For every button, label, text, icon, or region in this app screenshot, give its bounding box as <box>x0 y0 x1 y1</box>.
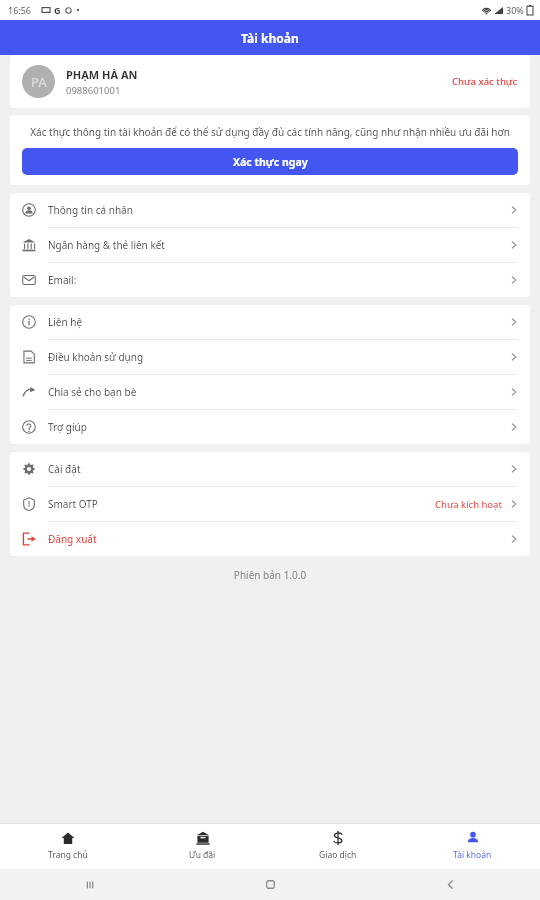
staticText: Ưu đãi <box>189 849 216 861</box>
button[interactable]: Xác thực ngay <box>22 148 518 175</box>
staticText: 30% <box>506 4 524 16</box>
staticText: PHẠM HÀ AN <box>66 67 138 82</box>
staticText: Phiên bản 1.0.0 <box>0 568 540 582</box>
button[interactable]: Email: <box>10 263 530 297</box>
button[interactable]: Ưu đãi <box>135 824 270 869</box>
button[interactable]: Đăng xuất <box>10 522 530 556</box>
staticText: Chưa xác thực <box>452 75 518 88</box>
staticText: Email: <box>48 273 510 287</box>
button[interactable]: Cài đặt <box>10 452 530 487</box>
staticText: Tài khoản <box>241 30 299 46</box>
staticText: G <box>54 4 61 16</box>
staticText: Thông tin cá nhân <box>48 203 510 217</box>
staticText: 16:56 <box>8 4 32 16</box>
button[interactable]: Smart OTP <box>10 487 530 522</box>
staticText: 0988601001 <box>66 84 121 97</box>
button[interactable]: Điều khoản sử dụng <box>10 340 530 375</box>
staticText: Xác thực ngay <box>233 155 308 169</box>
button[interactable]: Ngân hàng & thẻ liên kết <box>10 228 530 263</box>
button[interactable]: Thông tin cá nhân <box>10 193 530 228</box>
staticText: Tài khoản <box>453 849 492 861</box>
button[interactable]: PA <box>10 55 530 108</box>
staticText: Đăng xuất <box>48 532 510 546</box>
button[interactable]: Giao dịch <box>270 824 405 869</box>
staticText: Liên hệ <box>48 315 510 329</box>
button[interactable]: Trợ giúp <box>10 410 530 444</box>
button[interactable]: Tài khoản <box>405 824 540 869</box>
staticText: Điều khoản sử dụng <box>48 350 510 364</box>
staticText: Smart OTP <box>48 497 435 511</box>
staticText: Xác thực thông tin tài khoản để có thể s… <box>22 125 518 139</box>
staticText: Trợ giúp <box>48 420 510 434</box>
button[interactable]: Chia sẻ cho bạn bè <box>10 375 530 410</box>
staticText: PA <box>31 73 47 91</box>
staticText: Cài đặt <box>48 462 510 476</box>
staticText: Giao dịch <box>319 849 357 861</box>
staticText: Chia sẻ cho bạn bè <box>48 385 510 399</box>
button[interactable]: Trang chủ <box>0 824 135 869</box>
button[interactable]: Liên hệ <box>10 305 530 340</box>
staticText: Chưa kích hoạt <box>435 498 502 511</box>
staticText: Ngân hàng & thẻ liên kết <box>48 238 510 252</box>
staticText: Trang chủ <box>48 849 88 861</box>
